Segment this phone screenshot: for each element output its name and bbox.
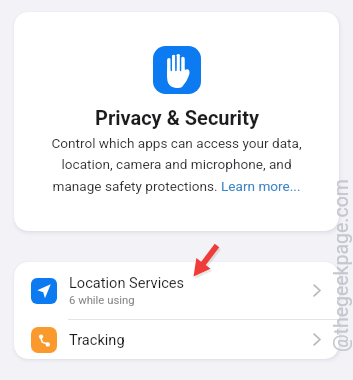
staticText: @thegeekpage.com bbox=[330, 179, 353, 352]
button[interactable]: Location Services bbox=[14, 262, 339, 319]
staticText: Tracking bbox=[69, 331, 125, 348]
staticText: 6 while using bbox=[69, 294, 135, 307]
button[interactable]: Tracking bbox=[14, 320, 339, 359]
staticText: Control which apps can access your data,… bbox=[51, 135, 302, 195]
staticText: Location Services bbox=[69, 274, 185, 291]
staticText: Privacy & Security bbox=[95, 106, 259, 129]
